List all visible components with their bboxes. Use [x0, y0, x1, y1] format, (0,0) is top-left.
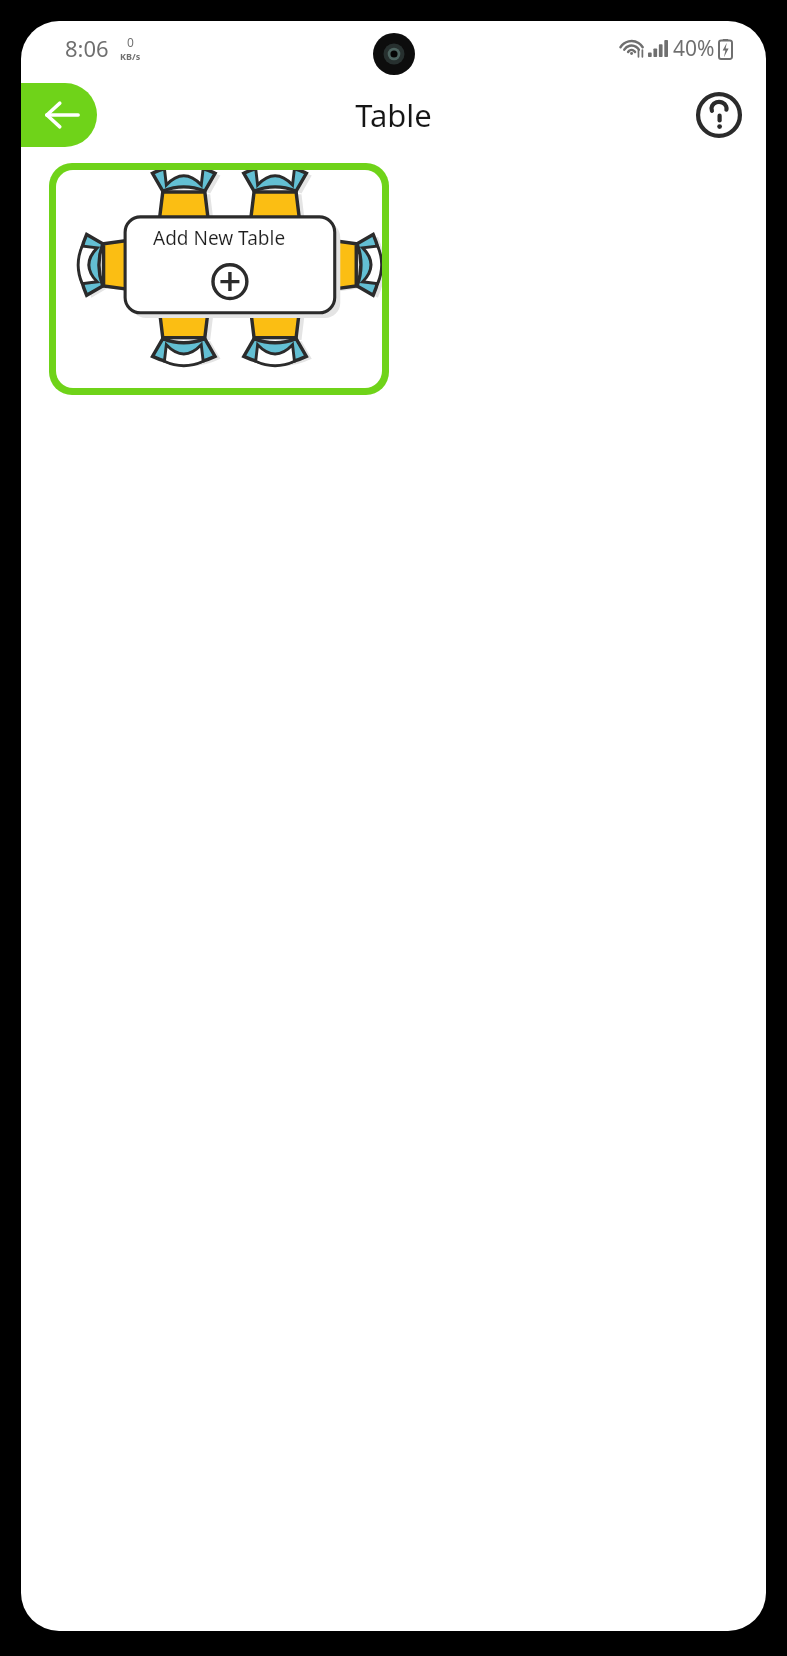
- staticText: Table: [355, 94, 432, 136]
- button[interactable]: Help: [692, 88, 746, 142]
- staticText: 8:06: [65, 33, 109, 63]
- button[interactable]: Add New Table: [49, 163, 389, 395]
- staticText: Add New Table: [153, 225, 286, 251]
- button[interactable]: Back: [21, 83, 97, 147]
- staticText: 0: [127, 34, 134, 50]
- staticText: KB/s: [120, 50, 141, 62]
- staticText: 40%: [673, 34, 715, 63]
